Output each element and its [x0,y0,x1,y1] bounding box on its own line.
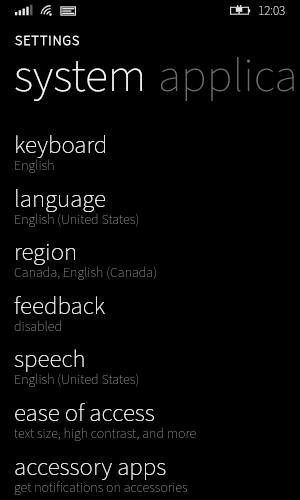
button[interactable]: accessory apps [0,451,300,500]
staticText: get notifications on accessories [14,478,188,498]
staticText: speech [14,341,86,377]
other: Battery charging [228,2,254,20]
button[interactable]: system [14,42,154,110]
other: Messaging [58,2,80,20]
button[interactable]: speech [0,343,300,397]
staticText: English (United States) [14,370,140,390]
staticText: region [14,234,78,270]
button[interactable]: ease of access [0,397,300,451]
staticText: keyboard [14,127,108,163]
other: Wi-Fi connected [39,2,63,20]
staticText: English [14,156,55,176]
staticText: ease of access [14,395,155,431]
staticText: English (United States) [14,210,140,230]
button[interactable]: region [0,236,300,290]
staticText: SETTINGS [15,31,81,51]
staticText: Canada, English (Canada) [14,263,157,283]
staticText: 12:03 [258,2,286,21]
staticText: language [14,181,107,217]
button[interactable]: applications [158,42,300,110]
staticText: feedback [14,288,106,324]
staticText: text size, high contrast, and more [14,424,197,444]
button[interactable]: language [0,183,300,237]
staticText: accessory apps [14,449,167,485]
staticText: disabled [14,317,63,337]
other: Cellular signal strength [13,2,37,20]
button[interactable]: feedback [0,290,300,344]
button[interactable]: keyboard [0,129,300,183]
button[interactable]: SETTINGS [0,28,110,50]
